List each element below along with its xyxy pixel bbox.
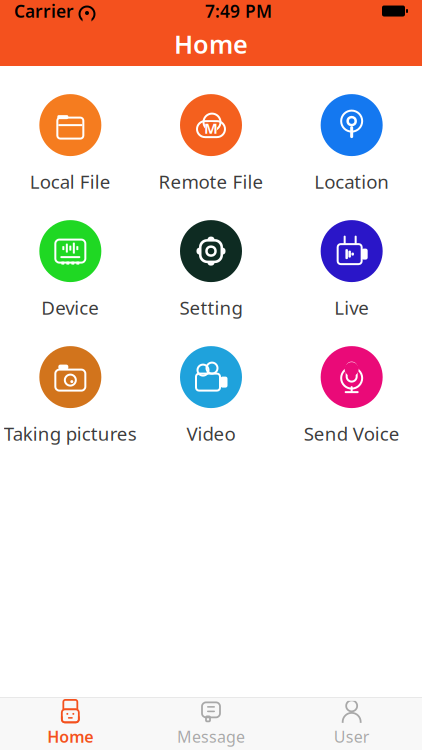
staticText: Home <box>47 726 93 747</box>
button[interactable]: Live <box>281 216 422 324</box>
button[interactable]: Home <box>0 698 141 750</box>
button[interactable]: Location <box>281 90 422 198</box>
staticText: Remote File <box>158 169 263 194</box>
button[interactable]: User <box>281 698 422 750</box>
button[interactable]: Device <box>0 216 141 324</box>
staticText: Carrier <box>14 0 74 22</box>
staticText: Send Voice <box>304 421 400 446</box>
staticText: 7:49 PM <box>205 0 272 22</box>
staticText: Taking pictures <box>4 421 137 446</box>
staticText: Home <box>174 27 248 61</box>
staticText: Local File <box>30 169 111 194</box>
button[interactable]: Video <box>141 342 281 450</box>
staticText: Device <box>41 295 99 320</box>
staticText: Setting <box>179 295 242 320</box>
button[interactable]: Setting <box>141 216 281 324</box>
staticText: Message <box>177 726 245 747</box>
staticText: Live <box>334 295 369 320</box>
button[interactable]: Message <box>141 698 281 750</box>
staticText: Location <box>314 169 389 194</box>
button[interactable]: Taking pictures <box>0 342 141 450</box>
button[interactable]: M <box>141 90 281 198</box>
staticText: User <box>334 726 370 747</box>
button[interactable]: Send Voice <box>281 342 422 450</box>
staticText: Video <box>186 421 235 446</box>
staticText: M <box>204 118 218 138</box>
button[interactable]: Local File <box>0 90 141 198</box>
